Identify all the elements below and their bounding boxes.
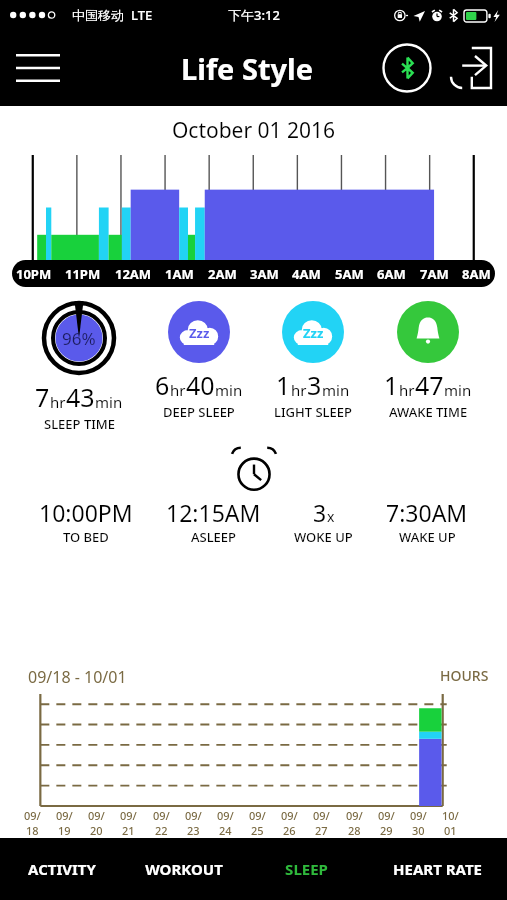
staticText: 09/ bbox=[217, 808, 234, 823]
staticText: 21 bbox=[122, 823, 135, 838]
staticText: 09/ bbox=[24, 808, 41, 823]
button[interactable]: Menu bbox=[12, 44, 64, 92]
staticText: 10/ bbox=[442, 808, 459, 823]
staticText: ACTIVITY bbox=[28, 859, 96, 879]
staticText: 下午3:12 bbox=[228, 6, 280, 24]
button[interactable]: 96% bbox=[33, 301, 125, 433]
button[interactable]: 3 bbox=[292, 497, 355, 546]
staticText: 09/ bbox=[120, 808, 137, 823]
staticText: hr bbox=[291, 380, 307, 400]
staticText: 10:00PM bbox=[39, 497, 133, 528]
button[interactable]: 1 bbox=[382, 301, 474, 421]
button[interactable]: 7:30AM bbox=[384, 497, 470, 546]
staticText: 7AM bbox=[420, 265, 449, 283]
button[interactable]: HEART RATE bbox=[367, 838, 507, 900]
staticText: 6AM bbox=[377, 265, 406, 283]
staticText: 24 bbox=[219, 823, 232, 838]
staticText: Zzz bbox=[189, 324, 210, 342]
staticText: 09/ bbox=[313, 808, 330, 823]
button[interactable]: Zzz bbox=[153, 301, 245, 421]
staticText: 47 bbox=[415, 368, 444, 402]
staticText: 19 bbox=[58, 823, 71, 838]
staticText: 1AM bbox=[165, 265, 194, 283]
staticText: October 01 2016 bbox=[0, 116, 507, 145]
staticText: 43 bbox=[66, 380, 95, 414]
staticText: 30 bbox=[412, 823, 425, 838]
staticText: 09/ bbox=[378, 808, 395, 823]
staticText: 5AM bbox=[335, 265, 364, 283]
staticText: 29 bbox=[380, 823, 393, 838]
staticText: 09/ bbox=[153, 808, 170, 823]
staticText: 01 bbox=[444, 823, 457, 838]
staticText: 25 bbox=[251, 823, 264, 838]
staticText: Life Style bbox=[181, 49, 314, 88]
staticText: 20 bbox=[90, 823, 103, 838]
staticText: 1 bbox=[384, 368, 399, 402]
staticText: 3 bbox=[307, 368, 322, 402]
staticText: hr bbox=[170, 380, 186, 400]
staticText: 09/ bbox=[185, 808, 202, 823]
button[interactable]: Bluetooth bbox=[381, 42, 433, 94]
staticText: x bbox=[327, 507, 335, 526]
button[interactable]: 12:15AM bbox=[164, 497, 263, 546]
staticText: 10PM bbox=[16, 265, 52, 283]
button[interactable]: 10:00PM bbox=[37, 497, 135, 546]
staticText: 28 bbox=[348, 823, 361, 838]
staticText: SLEEP TIME bbox=[44, 415, 115, 433]
staticText: hr bbox=[399, 380, 415, 400]
staticText: 96% bbox=[62, 327, 96, 350]
staticText: 09/ bbox=[56, 808, 73, 823]
staticText: hr bbox=[50, 392, 66, 412]
staticText: 6 bbox=[155, 368, 170, 402]
staticText: 中国移动 bbox=[72, 7, 124, 23]
staticText: 8AM bbox=[462, 265, 491, 283]
button[interactable]: SLEEP bbox=[245, 838, 367, 900]
staticText: HOURS bbox=[440, 666, 489, 685]
staticText: 12AM bbox=[115, 265, 152, 283]
staticText: 1 bbox=[276, 368, 291, 402]
staticText: DEEP SLEEP bbox=[163, 403, 235, 421]
staticText: 26 bbox=[283, 823, 296, 838]
staticText: 7 bbox=[35, 380, 50, 414]
staticText: min bbox=[95, 392, 123, 412]
staticText: LTE bbox=[131, 6, 153, 24]
staticText: 23 bbox=[187, 823, 200, 838]
staticText: WAKE UP bbox=[399, 528, 456, 546]
button[interactable]: ACTIVITY bbox=[0, 838, 123, 900]
staticText: HEART RATE bbox=[393, 859, 482, 879]
staticText: Zzz bbox=[303, 324, 324, 342]
staticText: 09/ bbox=[88, 808, 105, 823]
staticText: 3AM bbox=[250, 265, 279, 283]
staticText: 27 bbox=[315, 823, 328, 838]
staticText: 3 bbox=[313, 497, 327, 528]
staticText: 7:30AM bbox=[386, 497, 468, 528]
staticText: 18 bbox=[26, 823, 39, 838]
staticText: WOKE UP bbox=[294, 528, 353, 546]
staticText: 2AM bbox=[208, 265, 237, 283]
staticText: 09/ bbox=[410, 808, 427, 823]
staticText: 09/18 - 10/01 bbox=[28, 666, 127, 688]
staticText: ASLEEP bbox=[191, 528, 237, 546]
staticText: 40 bbox=[186, 368, 215, 402]
staticText: 22 bbox=[155, 823, 168, 838]
staticText: min bbox=[215, 380, 243, 400]
staticText: 09/ bbox=[281, 808, 298, 823]
staticText: 09/ bbox=[249, 808, 266, 823]
staticText: LIGHT SLEEP bbox=[274, 403, 352, 421]
staticText: min bbox=[444, 380, 472, 400]
button[interactable]: WORKOUT bbox=[123, 838, 245, 900]
staticText: TO BED bbox=[63, 528, 109, 546]
staticText: 4AM bbox=[292, 265, 321, 283]
staticText: min bbox=[322, 380, 350, 400]
staticText: 09/ bbox=[346, 808, 363, 823]
staticText: AWAKE TIME bbox=[389, 403, 468, 421]
button[interactable]: Sign out bbox=[447, 44, 495, 92]
staticText: WORKOUT bbox=[145, 859, 223, 879]
staticText: 12:15AM bbox=[166, 497, 261, 528]
button[interactable]: Zzz bbox=[272, 301, 354, 421]
staticText: 11PM bbox=[65, 265, 101, 283]
staticText: SLEEP bbox=[285, 859, 328, 879]
